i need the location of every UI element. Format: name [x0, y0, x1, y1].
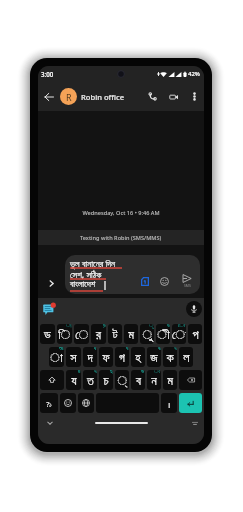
button[interactable]: Hide keyboard	[43, 416, 57, 430]
staticText: ফ	[102, 352, 110, 365]
button[interactable]: া	[49, 347, 64, 367]
button[interactable]: র	[91, 324, 106, 344]
staticText: ল	[183, 352, 190, 365]
staticText: ড	[44, 329, 51, 342]
staticText: জ	[150, 352, 158, 365]
staticText: Wednesday, Oct 16 • 9:46 AM	[38, 209, 204, 217]
button[interactable]: Expand	[43, 275, 59, 291]
button[interactable]: ম	[163, 370, 177, 390]
button[interactable]: R	[60, 88, 77, 105]
staticText: R	[66, 91, 72, 103]
staticText: ্	[117, 375, 128, 388]
staticText: হ	[135, 352, 141, 365]
button[interactable]: ে	[74, 324, 89, 344]
staticText: ট	[112, 329, 118, 342]
button[interactable]: ট	[108, 324, 122, 344]
button[interactable]: ক	[163, 347, 177, 367]
staticText: ী	[66, 324, 72, 329]
staticText: SMS	[184, 283, 191, 288]
staticText: ম	[128, 329, 134, 342]
button[interactable]: Backspace	[179, 370, 202, 390]
button[interactable]: ী	[156, 324, 170, 344]
staticText: 42%	[188, 70, 200, 78]
button[interactable]: ি	[57, 324, 72, 344]
staticText: ড়	[103, 324, 106, 329]
staticText: ধ	[94, 347, 97, 352]
staticText: দ	[87, 352, 93, 365]
button[interactable]: More options	[185, 82, 203, 111]
staticText: ং	[154, 370, 161, 375]
button[interactable]: ব	[131, 370, 145, 390]
staticText: ন	[151, 375, 157, 388]
button[interactable]: স	[66, 347, 81, 367]
button[interactable]: Call	[141, 82, 163, 111]
staticText: ঝ	[158, 347, 161, 352]
staticText: চ	[103, 375, 109, 388]
button[interactable]: Enter	[179, 393, 202, 413]
button[interactable]: ত	[83, 370, 97, 390]
staticText: উ	[167, 324, 170, 329]
staticText: প	[192, 329, 199, 342]
button[interactable]: চ	[99, 370, 113, 390]
button[interactable]: ফ	[99, 347, 113, 367]
button[interactable]: ভুল বানানের দিন	[65, 255, 200, 294]
button[interactable]: ।	[161, 393, 177, 413]
staticText: ঘ	[126, 347, 129, 352]
button[interactable]: Change language	[78, 393, 94, 413]
staticText: ো	[172, 329, 186, 342]
staticText: স	[70, 352, 77, 365]
button[interactable]: ন	[147, 370, 161, 390]
button[interactable]: Emoji	[156, 273, 172, 289]
button[interactable]: দ	[83, 347, 97, 367]
staticText: ব	[136, 375, 141, 388]
button[interactable]: Attach file	[137, 273, 153, 289]
button[interactable]: Message suggestion	[41, 301, 57, 317]
staticText: ম	[167, 375, 173, 388]
button[interactable]: গ	[115, 347, 129, 367]
button[interactable]: Back	[38, 82, 60, 111]
staticText: Texting with Robin (SMS/MMS)	[80, 234, 162, 242]
button[interactable]: Emoji	[60, 393, 76, 413]
staticText: ি	[58, 329, 71, 342]
staticText: ছ	[110, 370, 113, 375]
button[interactable]: প	[188, 324, 202, 344]
button[interactable]: ্	[115, 370, 129, 390]
button[interactable]: Video call	[163, 82, 185, 111]
button[interactable]: য	[66, 370, 81, 390]
staticText: ে	[75, 329, 89, 342]
staticText: বাংলাদেশ	[70, 280, 96, 289]
button[interactable]: ?১	[40, 393, 58, 413]
staticText: য়	[78, 370, 81, 375]
staticText: ু	[142, 329, 153, 342]
staticText: আ	[59, 347, 64, 352]
button[interactable]: Switch keyboard	[189, 417, 201, 429]
button[interactable]: ো	[172, 324, 186, 344]
staticText: র	[96, 329, 101, 342]
button[interactable]: ড	[40, 324, 55, 344]
staticText: ভ	[141, 370, 145, 375]
staticText: ৌ	[178, 324, 186, 329]
staticText: া	[50, 352, 63, 365]
button[interactable]: Send SMS	[178, 272, 196, 290]
staticText: খ	[174, 347, 177, 352]
button[interactable]: ু	[140, 324, 154, 344]
button[interactable]: হ	[131, 347, 145, 367]
button[interactable]: Shift	[40, 370, 64, 390]
staticText: ?১	[46, 400, 52, 409]
staticText: গ	[119, 352, 125, 365]
button[interactable]: জ	[147, 347, 161, 367]
staticText: ত	[87, 375, 94, 388]
staticText: ভুল বানানের দিন	[70, 257, 116, 269]
button[interactable]: Voice input	[186, 301, 202, 317]
button[interactable]: Robin office	[81, 92, 125, 102]
staticText: ী	[157, 329, 170, 342]
staticText: ।	[167, 399, 171, 410]
button[interactable]: ল	[179, 347, 193, 367]
button[interactable]: ম	[124, 324, 138, 344]
staticText: য	[71, 375, 77, 388]
button[interactable]: Texting with Robin (SMS/MMS)	[38, 230, 204, 245]
staticText: ক	[166, 352, 174, 365]
staticText: ূ	[149, 324, 154, 329]
staticText: সেশ, সঠিক	[70, 268, 102, 280]
